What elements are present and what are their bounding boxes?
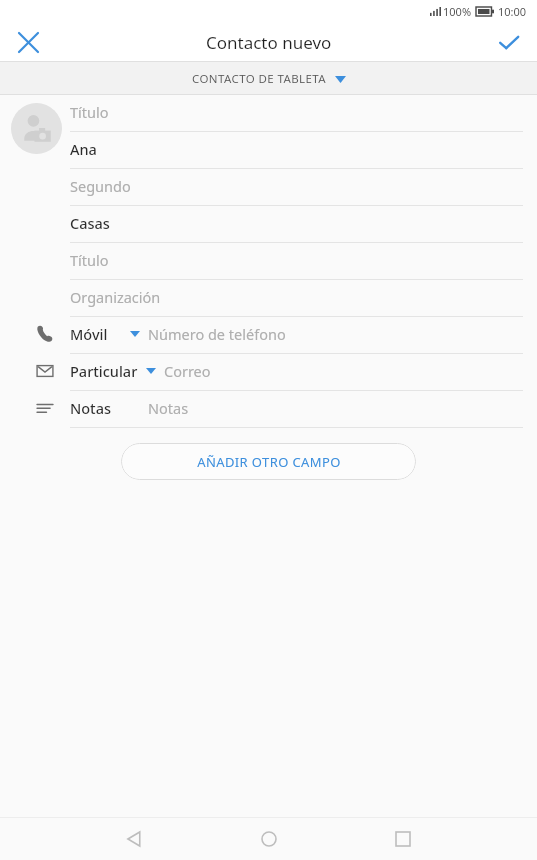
staticText: Número de teléfono [148,324,286,344]
button[interactable]: Atrás [110,817,158,860]
staticText: Ana [70,139,97,159]
button[interactable]: Título [0,243,537,280]
staticText: Casas [70,213,110,233]
staticText: Móvil [70,324,108,344]
staticText: 10:00 [498,4,527,19]
button[interactable]: Cancelar [8,22,48,62]
staticText: Notas [148,398,189,418]
staticText: Correo [164,361,211,381]
button[interactable]: Notas [0,391,537,428]
staticText: Organización [70,287,161,307]
button[interactable]: Cambiar tipo [146,368,156,374]
button[interactable]: CONTACTO DE TABLETA [192,71,346,87]
staticText: Segundo [70,176,131,196]
staticText: Notas [70,398,112,418]
button[interactable]: Móvil [0,317,537,354]
button[interactable]: Ana [0,132,537,169]
button[interactable]: AÑADIR OTRO CAMPO [121,443,416,480]
button[interactable]: Segundo [0,169,537,206]
button[interactable]: Guardar [489,22,529,62]
button[interactable]: Inicio [245,817,293,860]
button[interactable]: Casas [0,206,537,243]
button[interactable]: Título [0,95,537,132]
staticText: Título [70,250,109,270]
button[interactable]: Particular [0,354,537,391]
staticText: Título [70,102,109,122]
button[interactable]: Recientes [379,817,427,860]
staticText: CONTACTO DE TABLETA [192,71,327,87]
staticText: AÑADIR OTRO CAMPO [197,453,341,471]
button[interactable]: Añadir foto de contacto [11,103,62,154]
button[interactable]: Organización [0,280,537,317]
button[interactable]: Cambiar tipo [130,331,140,337]
staticText: 100% [443,4,472,19]
staticText: Particular [70,361,138,381]
staticText: Contacto nuevo [206,31,332,54]
